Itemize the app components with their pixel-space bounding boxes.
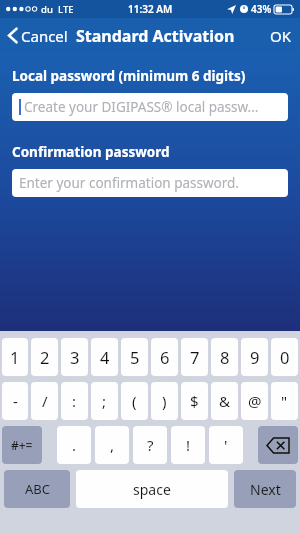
staticText: ; [102, 391, 107, 411]
staticText: #+= [11, 437, 33, 453]
button[interactable]: 6 [151, 338, 178, 376]
button[interactable]: , [95, 426, 129, 464]
staticText: @ [248, 391, 262, 411]
staticText: 6 [160, 346, 170, 368]
button[interactable]: 3 [61, 338, 88, 376]
button[interactable]: ! [171, 426, 205, 464]
staticText: 4 [100, 346, 110, 368]
staticText: Cancel [21, 26, 68, 46]
staticText: & [219, 391, 230, 411]
button[interactable]: $ [181, 382, 208, 420]
staticText: ( [132, 391, 137, 411]
button[interactable]: Next [234, 470, 296, 508]
staticText: du [41, 3, 53, 16]
button[interactable]: - [2, 382, 28, 420]
staticText: 7 [190, 346, 200, 368]
staticText: space [133, 480, 171, 499]
button[interactable]: ABC [4, 470, 70, 508]
button[interactable]: 9 [241, 338, 268, 376]
staticText: ! [186, 435, 191, 455]
staticText: / [42, 391, 48, 411]
button[interactable]: Cancel [0, 18, 72, 53]
staticText: 8 [220, 346, 230, 368]
staticText: 2 [40, 346, 50, 368]
staticText: Local password (minimum 6 digits) [12, 67, 246, 85]
staticText: OK [270, 26, 292, 46]
button[interactable]: 8 [211, 338, 238, 376]
staticText: Next [250, 480, 281, 499]
button[interactable]: #+= [2, 426, 42, 464]
staticText: 11:32 AM [128, 2, 173, 16]
staticText: LTE [58, 3, 74, 16]
button[interactable]: : [61, 382, 88, 420]
staticText: $ [190, 391, 199, 411]
button[interactable]: & [211, 382, 238, 420]
button[interactable]: 1 [2, 338, 28, 376]
staticText: 1 [10, 346, 20, 368]
button[interactable]: Create your DIGIPASS® local passw... [12, 93, 288, 121]
button[interactable]: / [31, 382, 58, 420]
button[interactable]: ; [91, 382, 118, 420]
staticText: 0 [280, 346, 290, 368]
button[interactable]: Enter your confirmation password. [12, 169, 288, 197]
staticText: Enter your confirmation password. [19, 174, 239, 192]
staticText: ABC [25, 480, 50, 498]
button[interactable]: 4 [91, 338, 118, 376]
staticText: - [13, 391, 18, 411]
button[interactable]: ' [209, 426, 243, 464]
button[interactable]: 2 [31, 338, 58, 376]
staticText: 9 [250, 346, 260, 368]
staticText: ' [224, 435, 228, 455]
button[interactable]: " [271, 382, 298, 420]
staticText: 3 [70, 346, 80, 368]
button[interactable]: 7 [181, 338, 208, 376]
staticText: " [281, 391, 288, 411]
button[interactable]: @ [241, 382, 268, 420]
button[interactable]: 5 [121, 338, 148, 376]
staticText: : [72, 391, 77, 411]
button[interactable]: OK [262, 18, 300, 53]
staticText: 43% [251, 2, 272, 16]
button[interactable]: 0 [271, 338, 298, 376]
staticText: Standard Activation [76, 25, 235, 47]
staticText: , [110, 435, 115, 455]
button[interactable]: ( [121, 382, 148, 420]
button[interactable]: ? [133, 426, 167, 464]
staticText: Create your DIGIPASS® local passw... [24, 98, 259, 116]
button[interactable]: Backspace [258, 426, 298, 464]
button[interactable]: space [76, 470, 228, 508]
button[interactable]: ) [151, 382, 178, 420]
staticText: ? [147, 435, 154, 455]
staticText: ) [162, 391, 167, 411]
button[interactable]: . [57, 426, 91, 464]
staticText: 5 [130, 346, 140, 368]
staticText: Confirmation password [12, 143, 170, 161]
staticText: . [72, 435, 77, 455]
